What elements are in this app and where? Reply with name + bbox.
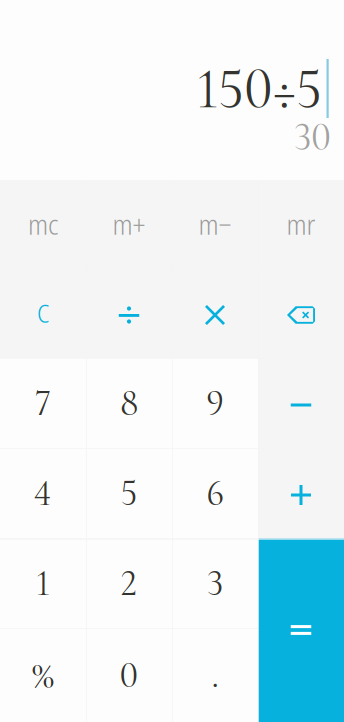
- button[interactable]: Multiply: [172, 268, 258, 358]
- button[interactable]: m+: [86, 180, 172, 268]
- staticText: 4: [34, 470, 52, 516]
- button[interactable]: 4: [0, 448, 86, 538]
- staticText: 1: [35, 560, 50, 606]
- staticText: mc: [28, 205, 58, 243]
- button[interactable]: mr: [258, 180, 344, 268]
- button[interactable]: m−: [172, 180, 258, 268]
- button[interactable]: mc: [0, 180, 86, 268]
- button[interactable]: %: [0, 628, 86, 722]
- button[interactable]: 0: [86, 628, 172, 722]
- staticText: 30: [294, 113, 331, 161]
- staticText: 2: [120, 560, 137, 606]
- button[interactable]: 7: [0, 358, 86, 448]
- button[interactable]: Divide: [86, 268, 172, 358]
- staticText: 9: [206, 380, 224, 426]
- staticText: 3: [207, 560, 223, 606]
- button[interactable]: 9: [172, 358, 258, 448]
- staticText: C: [37, 296, 49, 330]
- button[interactable]: .: [172, 628, 258, 722]
- button[interactable]: C: [0, 268, 86, 358]
- button[interactable]: Equals: [258, 538, 344, 722]
- staticText: .: [211, 652, 218, 698]
- staticText: 8: [120, 380, 138, 426]
- staticText: m−: [198, 205, 231, 243]
- staticText: m+: [112, 205, 145, 243]
- button[interactable]: 3: [172, 538, 258, 628]
- button[interactable]: Backspace: [258, 268, 344, 358]
- button[interactable]: 2: [86, 538, 172, 628]
- staticText: %: [31, 651, 54, 699]
- staticText: 6: [206, 470, 224, 516]
- button[interactable]: Minus: [258, 358, 344, 448]
- staticText: 7: [35, 380, 51, 426]
- staticText: 5: [120, 470, 137, 516]
- button[interactable]: 5: [86, 448, 172, 538]
- staticText: 150÷5: [196, 54, 322, 124]
- button[interactable]: 6: [172, 448, 258, 538]
- button[interactable]: 8: [86, 358, 172, 448]
- staticText: mr: [286, 205, 315, 243]
- button[interactable]: Plus: [258, 448, 344, 538]
- button[interactable]: 1: [0, 538, 86, 628]
- staticText: 0: [119, 652, 138, 698]
